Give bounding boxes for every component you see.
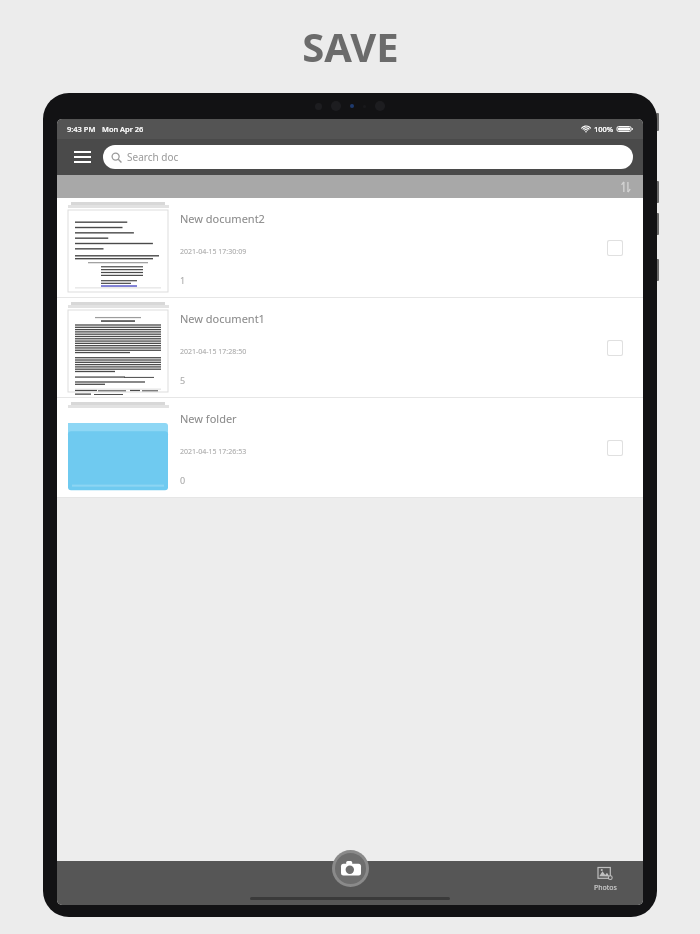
- staticText: New document1: [180, 311, 265, 326]
- button[interactable]: Select New document2: [587, 198, 643, 297]
- button[interactable]: Photos: [594, 866, 617, 893]
- staticText: Search doc: [127, 150, 179, 164]
- staticText: 100%: [594, 124, 614, 134]
- button[interactable]: Search doc: [103, 145, 633, 169]
- button[interactable]: Select New document1: [587, 298, 643, 397]
- staticText: 1: [180, 274, 186, 286]
- staticText: 2021-04-15 17:26:53: [180, 447, 247, 457]
- button[interactable]: New document1: [57, 298, 643, 397]
- staticText: 2021-04-15 17:28:50: [180, 347, 247, 357]
- staticText: 0: [180, 474, 186, 486]
- staticText: Mon Apr 26: [102, 124, 144, 134]
- staticText: Photos: [594, 883, 617, 893]
- button[interactable]: Camera: [332, 850, 369, 887]
- staticText: 5: [180, 374, 186, 386]
- button[interactable]: Select New folder: [587, 398, 643, 497]
- button[interactable]: Menu: [67, 142, 97, 172]
- button[interactable]: New folder: [57, 398, 643, 497]
- staticText: New document2: [180, 211, 265, 226]
- button[interactable]: New document2: [57, 198, 643, 297]
- staticText: 9:43 PM: [67, 124, 96, 134]
- staticText: New folder: [180, 411, 237, 426]
- staticText: SAVE: [302, 19, 399, 73]
- staticText: 2021-04-15 17:30:09: [180, 247, 247, 257]
- button[interactable]: Sort: [615, 176, 637, 198]
